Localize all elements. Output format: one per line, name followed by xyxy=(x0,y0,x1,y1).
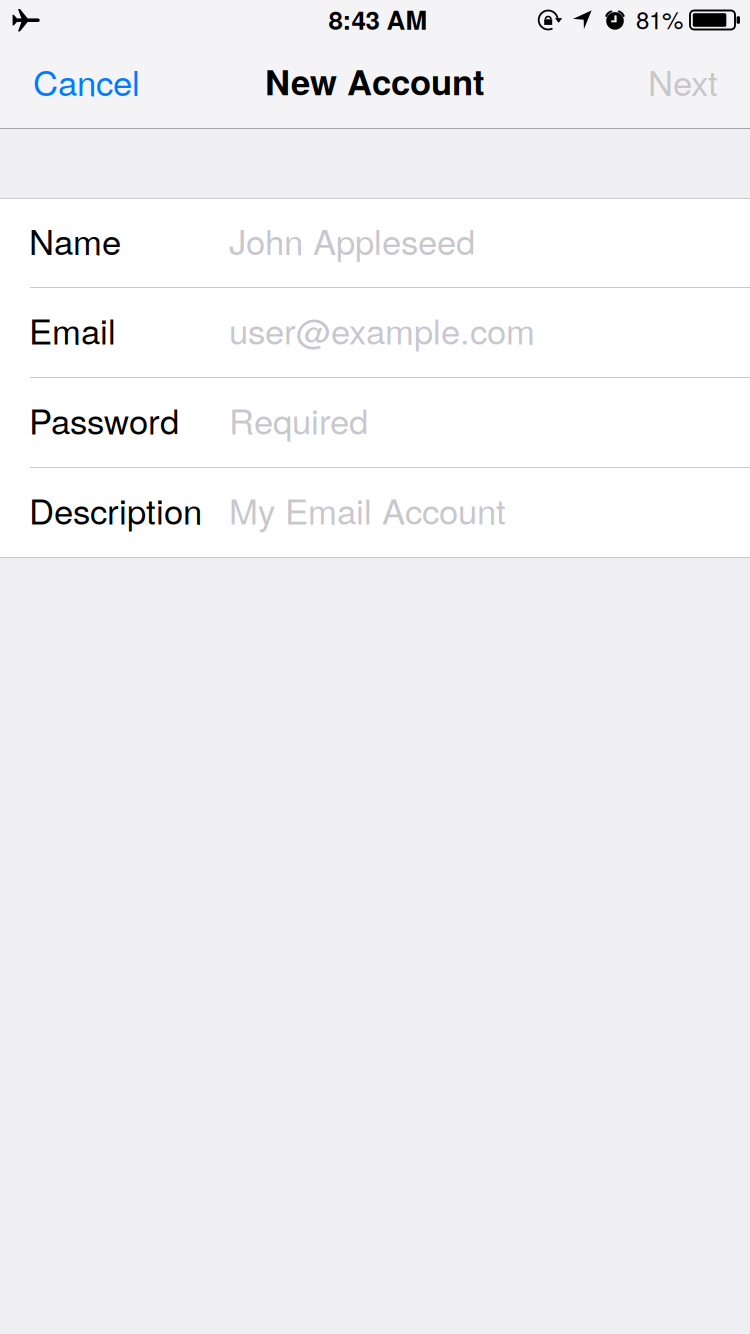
staticText: Email xyxy=(29,305,116,354)
staticText: Next xyxy=(648,56,718,106)
staticText: John Appleseed xyxy=(229,215,475,265)
staticText: Cancel xyxy=(33,56,140,106)
staticText: user@example.com xyxy=(229,305,535,354)
staticText: Name xyxy=(29,215,121,265)
staticText: My Email Account xyxy=(229,485,506,534)
button[interactable]: Name xyxy=(0,199,750,288)
staticText: New Account xyxy=(265,56,485,106)
button[interactable]: Next xyxy=(624,40,750,128)
staticText: Required xyxy=(229,395,368,444)
staticText: Password xyxy=(29,395,179,444)
staticText: 8:43 AM xyxy=(328,0,427,38)
staticText: 81% xyxy=(636,2,683,36)
button[interactable]: Password xyxy=(0,378,750,468)
button[interactable]: Cancel xyxy=(0,40,164,128)
button[interactable]: Email xyxy=(0,288,750,378)
button[interactable]: Description xyxy=(0,468,750,557)
staticText: Description xyxy=(29,485,202,534)
